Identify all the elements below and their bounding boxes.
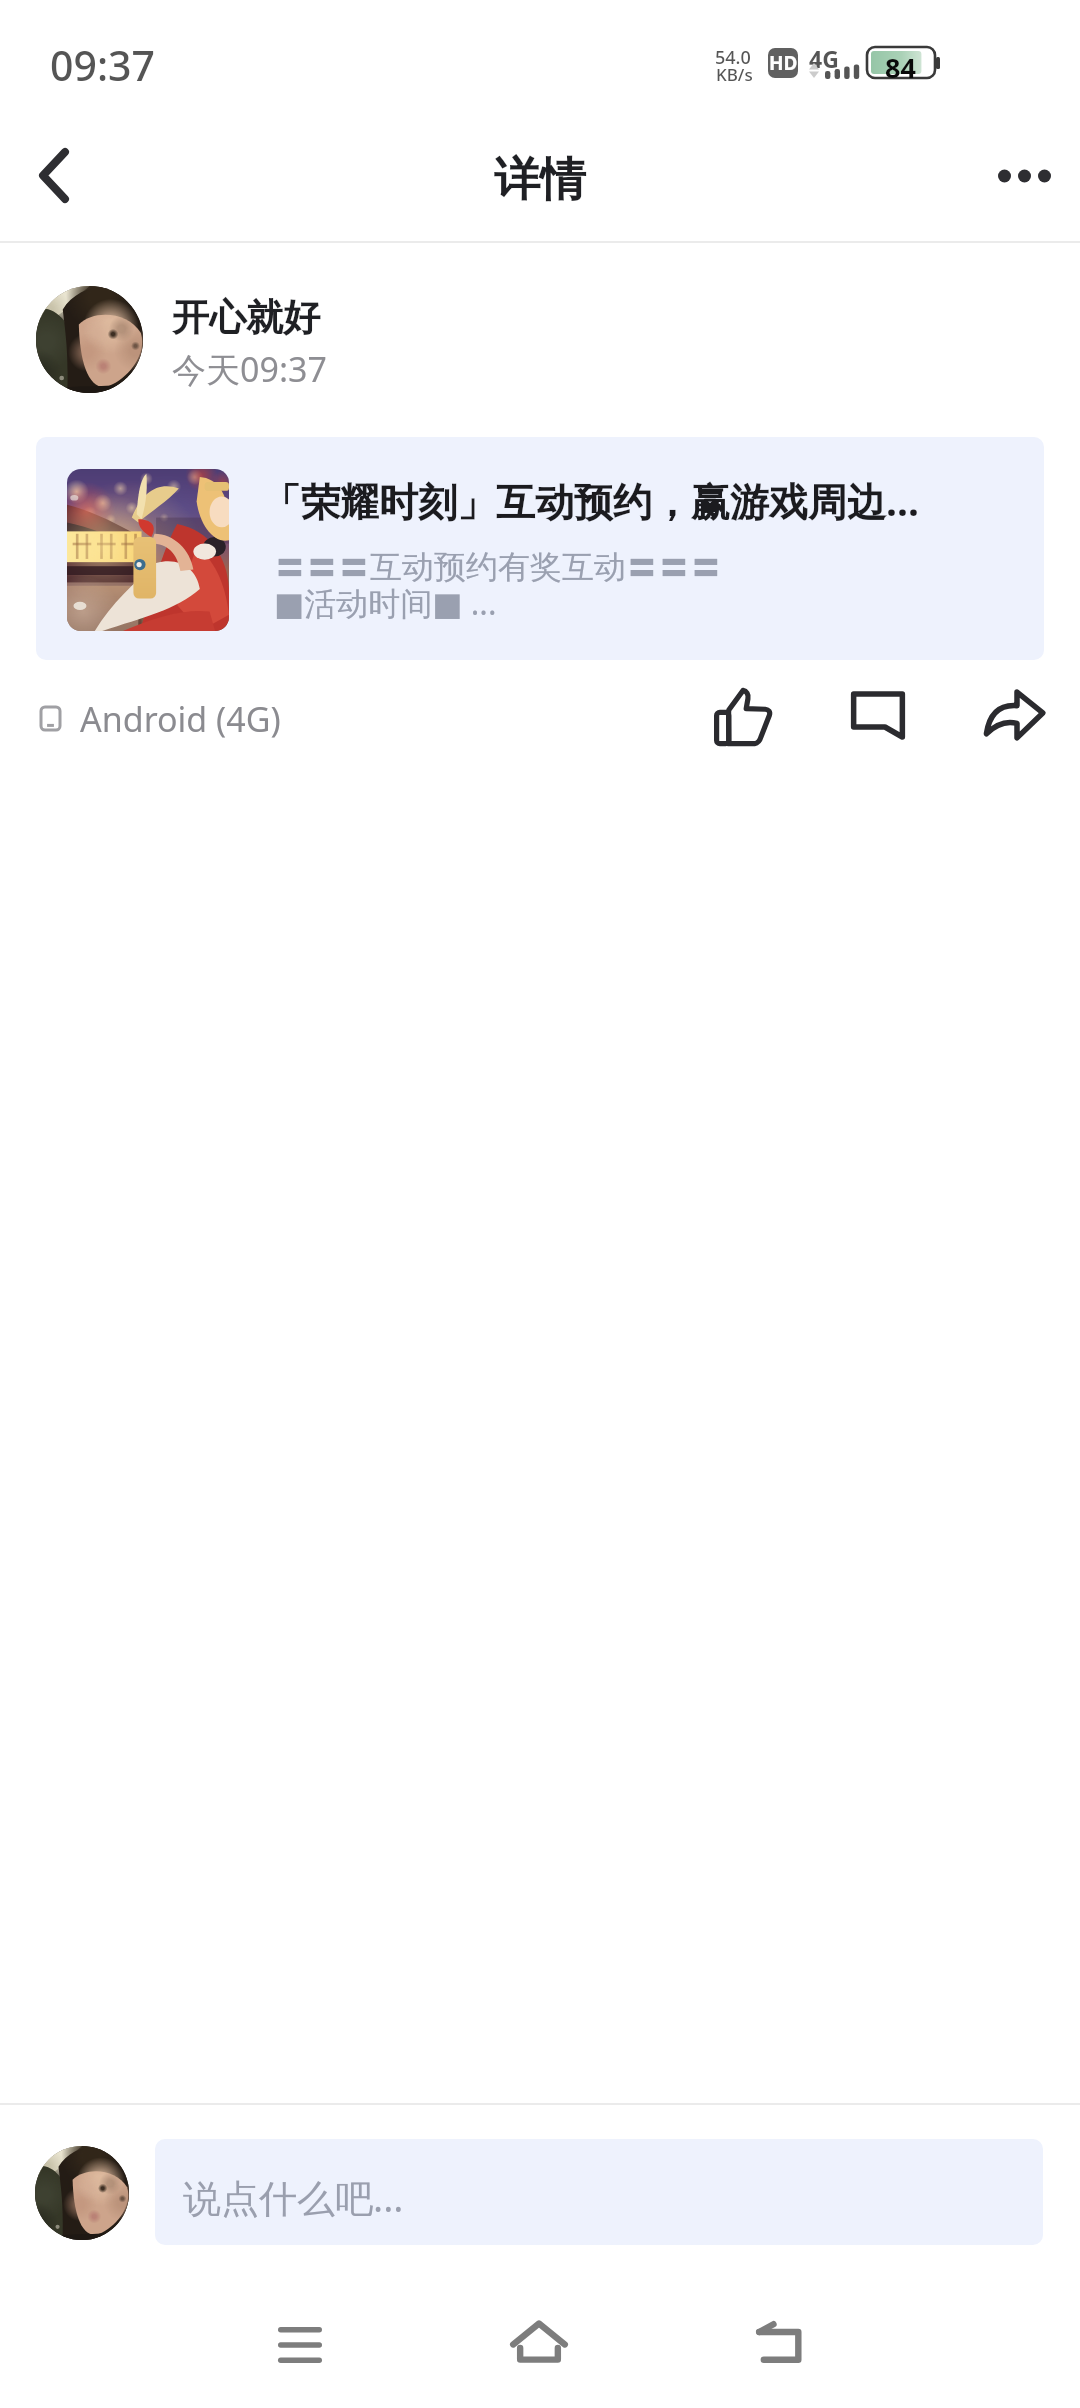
staticText: 84 — [885, 49, 916, 80]
staticText: ■活动时间■ ... — [274, 581, 497, 625]
button[interactable]: Back — [720, 2266, 840, 2408]
staticText: 开心就好 — [172, 294, 320, 341]
button[interactable]: 「荣耀时刻」互动预约，赢游戏周边... — [36, 437, 1044, 660]
button[interactable]: Comment — [827, 658, 929, 768]
staticText: 「荣耀时刻」互动预约，赢游戏周边... — [262, 474, 919, 527]
button[interactable]: Share — [963, 660, 1065, 770]
button[interactable]: Like — [692, 662, 794, 772]
button[interactable]: Recent apps — [240, 2266, 360, 2408]
staticText: 54.0 — [715, 45, 751, 70]
staticText: Android (4G) — [80, 696, 281, 742]
button[interactable]: More options — [968, 118, 1080, 241]
staticText: 4G — [809, 43, 839, 74]
staticText: 说点什么吧... — [183, 2171, 404, 2223]
staticText: 详情 — [494, 151, 586, 209]
button[interactable]: 说点什么吧... — [155, 2139, 1043, 2245]
button[interactable]: Home — [480, 2266, 600, 2408]
staticText: 〓〓〓互动预约有奖互动〓〓〓 — [274, 547, 722, 587]
staticText: 09:37 — [50, 37, 155, 93]
staticText: KB/s — [716, 63, 753, 86]
staticText: HD — [769, 50, 798, 76]
staticText: 今天09:37 — [172, 346, 327, 392]
button[interactable]: Back — [0, 118, 112, 241]
